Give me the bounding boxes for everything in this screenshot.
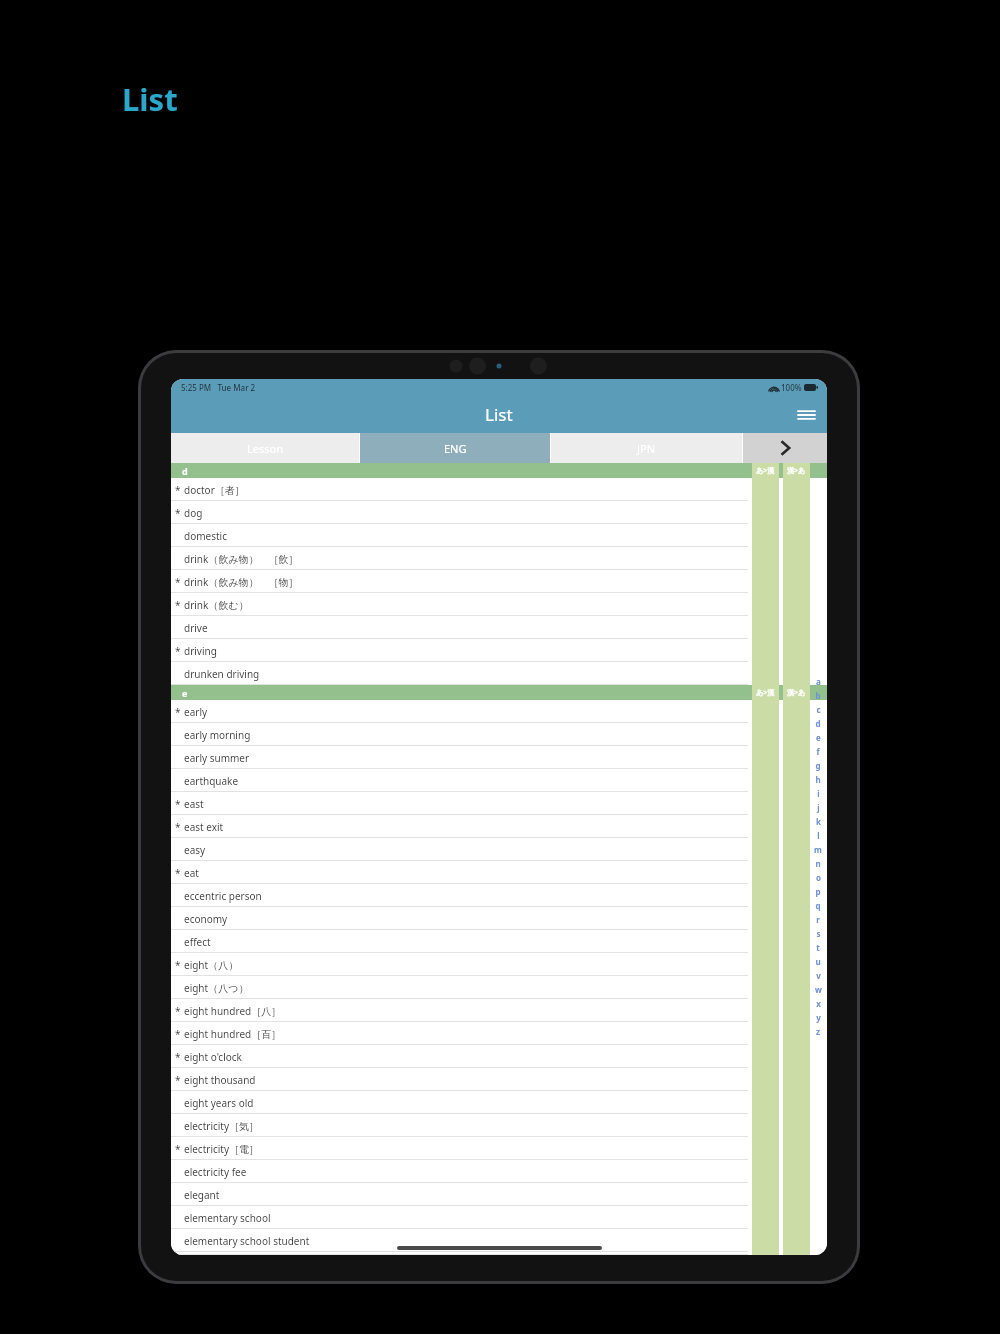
- button[interactable]: eight years old: [171, 1091, 827, 1114]
- staticText: eight thousand: [184, 1073, 256, 1087]
- staticText: Lesson: [247, 441, 283, 456]
- staticText: k: [816, 816, 821, 827]
- staticText: v: [816, 970, 821, 981]
- staticText: h: [815, 774, 821, 785]
- button[interactable]: ENG: [360, 433, 550, 463]
- button[interactable]: *: [171, 570, 827, 593]
- button[interactable]: *: [171, 1045, 827, 1068]
- button[interactable]: easy: [171, 838, 827, 861]
- button[interactable]: elementary school student: [171, 1229, 827, 1252]
- button[interactable]: eccentric person: [171, 884, 827, 907]
- button[interactable]: domestic: [171, 524, 827, 547]
- staticText: List: [485, 403, 513, 426]
- staticText: u: [815, 956, 821, 967]
- button[interactable]: *: [171, 478, 827, 501]
- button[interactable]: drink（飲み物） ［飲］: [171, 547, 827, 570]
- staticText: drink（飲む）: [184, 598, 249, 612]
- staticText: elementary school: [184, 1211, 271, 1225]
- staticText: *: [175, 797, 181, 811]
- staticText: s: [816, 928, 821, 939]
- staticText: q: [815, 900, 821, 911]
- button[interactable]: 漢>あ: [783, 685, 810, 700]
- staticText: *: [175, 705, 181, 719]
- button[interactable]: *: [171, 1137, 827, 1160]
- staticText: t: [816, 942, 820, 953]
- button[interactable]: earthquake: [171, 769, 827, 792]
- staticText: electricity fee: [184, 1165, 247, 1179]
- staticText: b: [815, 690, 821, 701]
- button[interactable]: economy: [171, 907, 827, 930]
- staticText: economy: [184, 912, 228, 926]
- staticText: drunken driving: [184, 667, 260, 681]
- button[interactable]: drunken driving: [171, 662, 827, 685]
- button[interactable]: early summer: [171, 746, 827, 769]
- button[interactable]: *: [171, 792, 827, 815]
- button[interactable]: *: [171, 1022, 827, 1045]
- button[interactable]: embassy［大］: [171, 1252, 827, 1255]
- button[interactable]: eight（八つ）: [171, 976, 827, 999]
- staticText: drive: [184, 621, 208, 635]
- button[interactable]: elementary school: [171, 1206, 827, 1229]
- button[interactable]: electricity fee: [171, 1160, 827, 1183]
- button[interactable]: Alphabet index: [809, 674, 827, 1038]
- button[interactable]: *: [171, 999, 827, 1022]
- staticText: electricity［気］: [184, 1119, 260, 1133]
- button[interactable]: *: [171, 953, 827, 976]
- staticText: eight o'clock: [184, 1050, 242, 1064]
- staticText: *: [175, 1027, 181, 1041]
- staticText: *: [175, 483, 181, 497]
- staticText: early summer: [184, 751, 250, 765]
- staticText: driving: [184, 644, 217, 658]
- staticText: c: [816, 704, 821, 715]
- staticText: eccentric person: [184, 889, 262, 903]
- button[interactable]: *: [171, 1068, 827, 1091]
- staticText: easy: [184, 843, 206, 857]
- staticText: 5:25 PM Tue Mar 2: [181, 382, 256, 393]
- button[interactable]: *: [171, 639, 827, 662]
- button[interactable]: Next: [743, 433, 827, 463]
- staticText: r: [816, 914, 820, 925]
- staticText: i: [817, 788, 820, 799]
- staticText: effect: [184, 935, 211, 949]
- staticText: j: [817, 802, 820, 813]
- staticText: east exit: [184, 820, 224, 834]
- button[interactable]: effect: [171, 930, 827, 953]
- button[interactable]: early morning: [171, 723, 827, 746]
- button[interactable]: 漢>あ: [783, 463, 810, 478]
- button[interactable]: *: [171, 815, 827, 838]
- button[interactable]: drive: [171, 616, 827, 639]
- staticText: e: [182, 687, 188, 699]
- staticText: *: [175, 820, 181, 834]
- staticText: 漢>あ: [787, 688, 806, 698]
- button[interactable]: *: [171, 593, 827, 616]
- staticText: あ>漢: [756, 688, 775, 698]
- staticText: g: [815, 760, 821, 771]
- staticText: domestic: [184, 529, 227, 543]
- staticText: *: [175, 644, 181, 658]
- staticText: eight hundred［百］: [184, 1027, 282, 1041]
- staticText: drink（飲み物） ［飲］: [184, 552, 299, 566]
- staticText: doctor［者］: [184, 483, 245, 497]
- button[interactable]: *: [171, 861, 827, 884]
- button[interactable]: *: [171, 501, 827, 524]
- staticText: drink（飲み物） ［物］: [184, 575, 299, 589]
- staticText: o: [816, 872, 821, 883]
- staticText: early morning: [184, 728, 251, 742]
- staticText: *: [175, 506, 181, 520]
- staticText: JPN: [637, 441, 656, 456]
- button[interactable]: *: [171, 700, 827, 723]
- staticText: eight hundred［八］: [184, 1004, 282, 1018]
- staticText: f: [816, 746, 820, 757]
- button[interactable]: electricity［気］: [171, 1114, 827, 1137]
- button[interactable]: Menu: [793, 402, 819, 428]
- button[interactable]: あ>漢: [752, 685, 779, 700]
- staticText: eight（八つ）: [184, 981, 249, 995]
- staticText: d: [182, 465, 188, 477]
- button[interactable]: elegant: [171, 1183, 827, 1206]
- button[interactable]: あ>漢: [752, 463, 779, 478]
- staticText: List: [122, 78, 178, 120]
- staticText: m: [814, 844, 822, 855]
- staticText: *: [175, 575, 181, 589]
